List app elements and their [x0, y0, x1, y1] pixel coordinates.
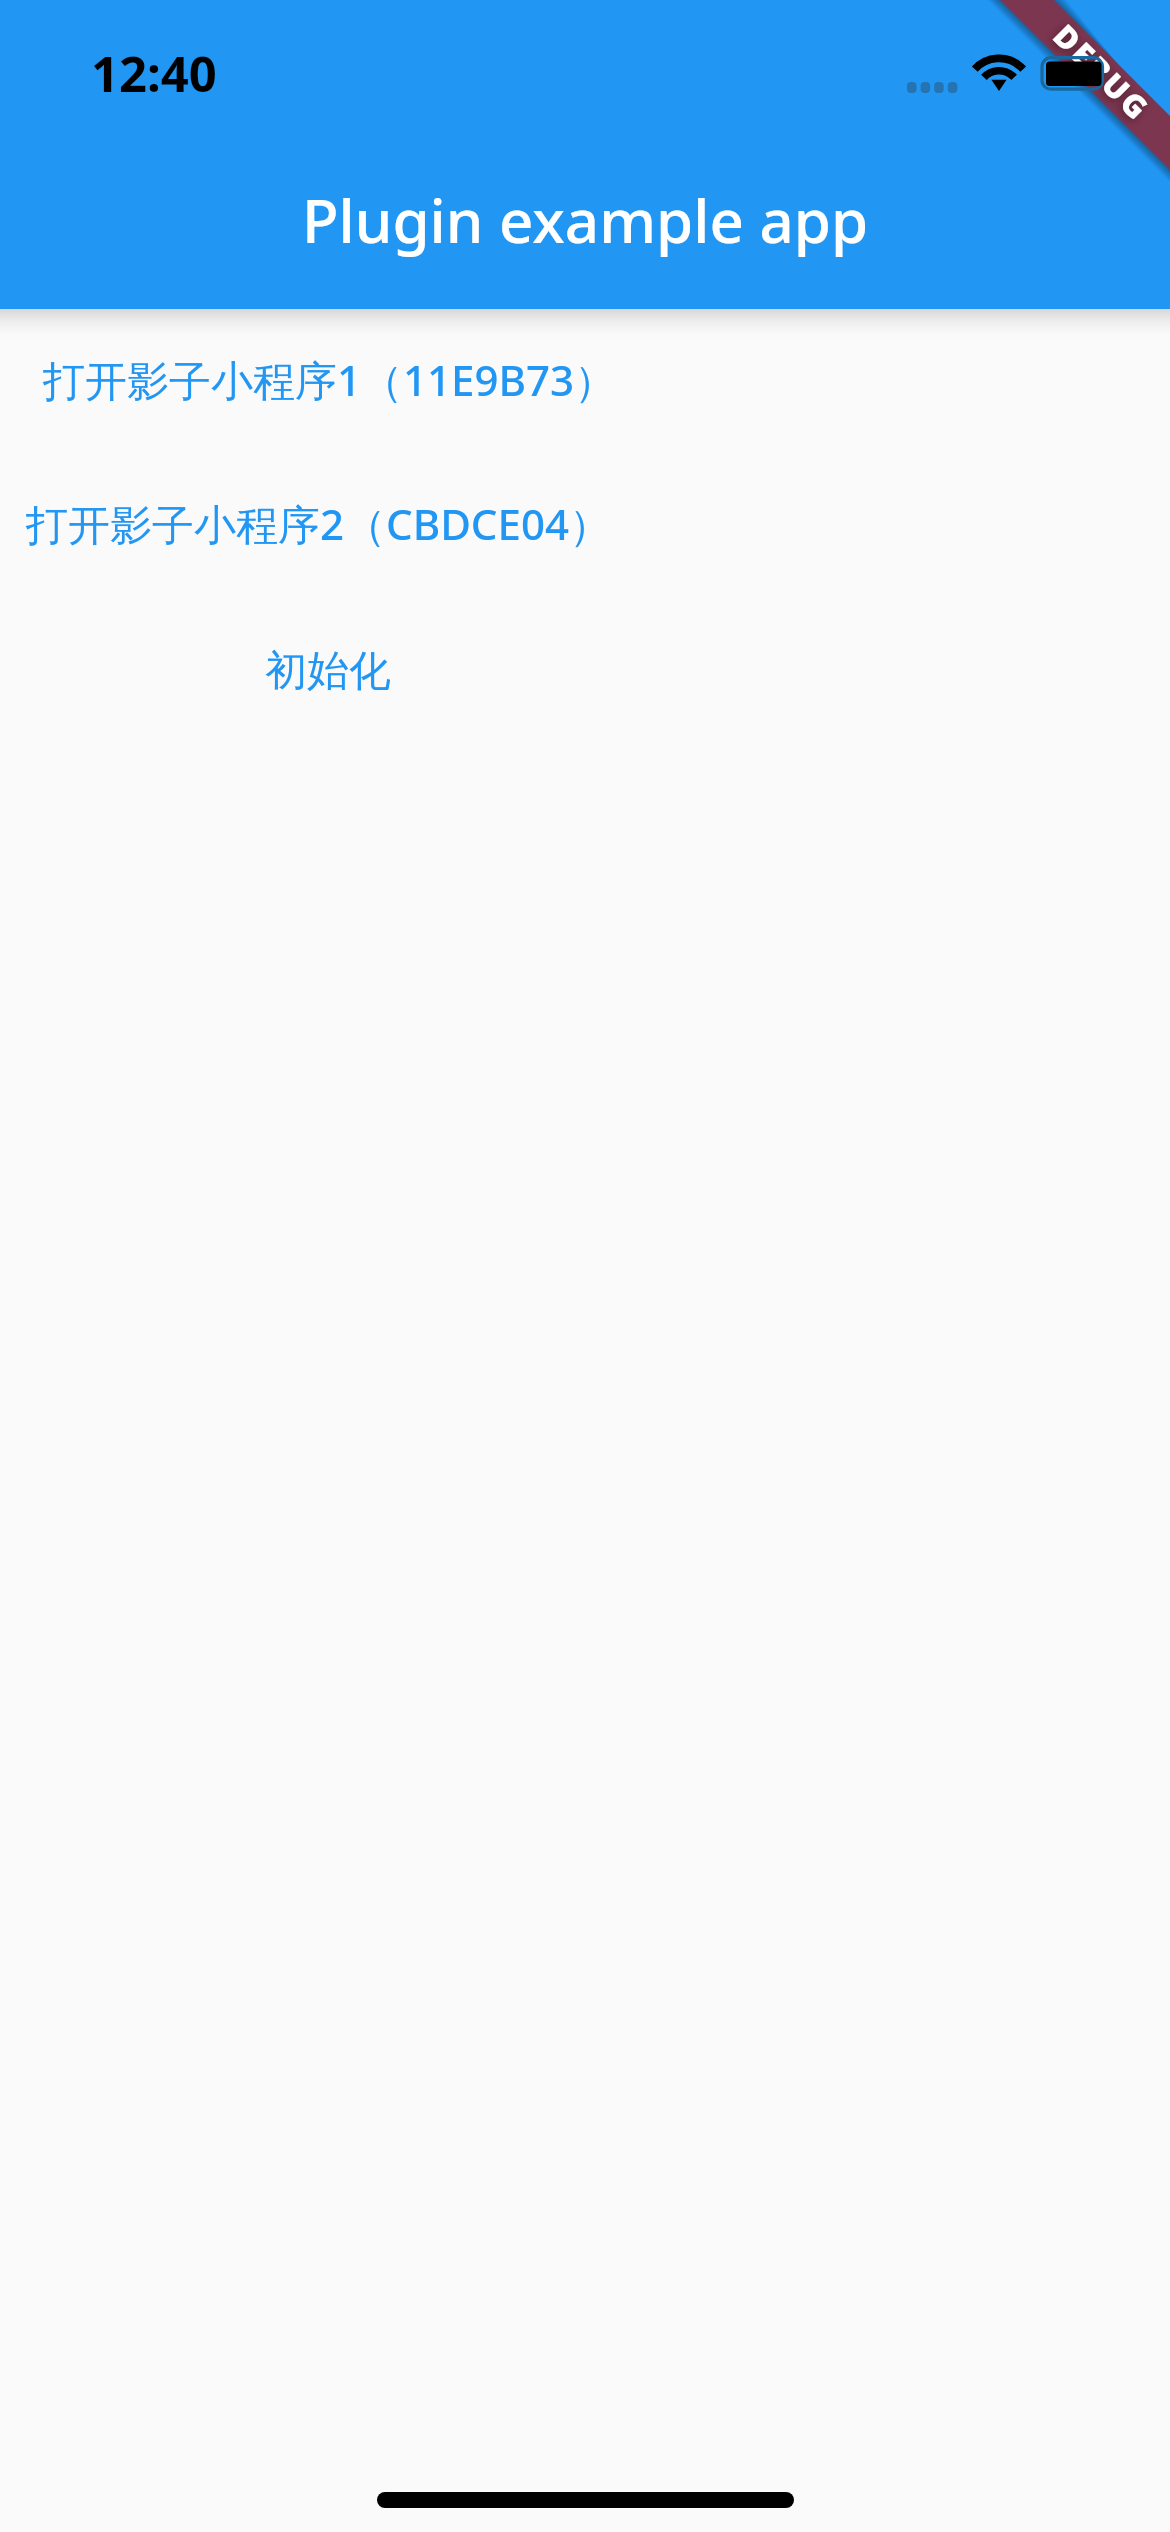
other: Wi-Fi: [961, 51, 1037, 93]
other: Battery full: [1038, 53, 1108, 95]
staticText: 打开影子小程序2（CBDCE04）: [26, 495, 611, 552]
other: Mobile signal: [907, 82, 958, 93]
staticText: 打开影子小程序1（11E9B73）: [43, 351, 617, 408]
button[interactable]: 打开影子小程序1（11E9B73）: [19, 319, 641, 440]
button[interactable]: 打开影子小程序2（CBDCE04）: [2, 463, 635, 584]
staticText: 初始化: [265, 645, 391, 698]
staticText: 12:40: [91, 40, 217, 107]
staticText: Plugin example app: [302, 179, 869, 261]
button[interactable]: 初始化: [232, 613, 424, 730]
staticText: DEBUG: [1045, 15, 1160, 130]
